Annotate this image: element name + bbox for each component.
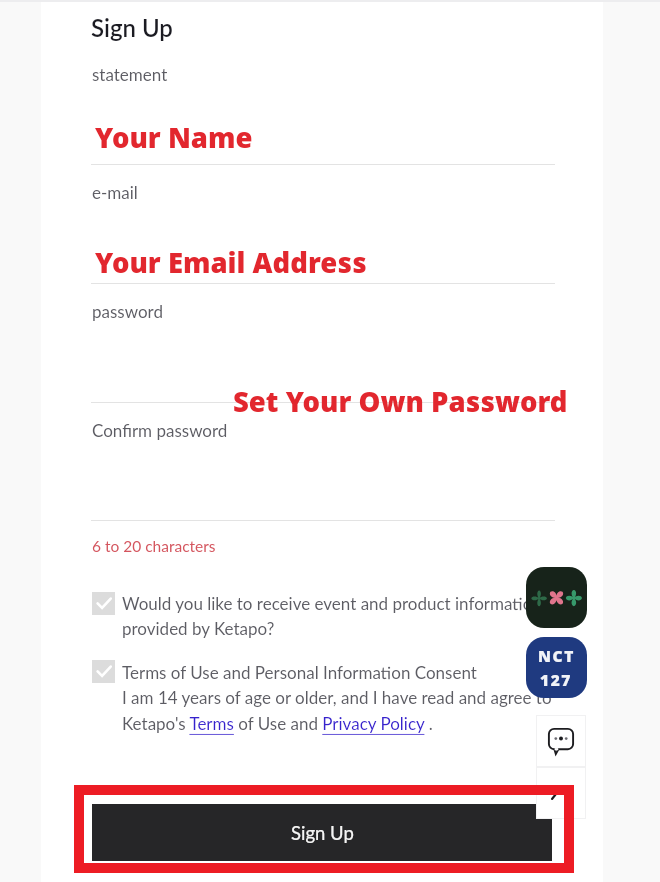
button[interactable]: Sign Up: [92, 804, 552, 861]
staticText: statement: [92, 64, 168, 84]
staticText: Would you like to receive event and prod…: [122, 593, 562, 639]
staticText: e-mail: [92, 182, 138, 202]
staticText: Set Your Own Password: [233, 383, 568, 420]
button[interactable]: Checkbox: [92, 592, 115, 615]
staticText: 6 to 20 characters: [92, 537, 216, 556]
staticText: password: [92, 301, 163, 321]
button[interactable]: Scroll to top: [536, 767, 586, 819]
button[interactable]: NCT 127: [526, 637, 587, 698]
staticText: NCT: [538, 645, 575, 666]
staticText: 127: [540, 669, 573, 690]
staticText: Sign Up: [291, 822, 354, 844]
button[interactable]: Chat: [536, 715, 586, 767]
button[interactable]: App shortcut: [526, 567, 587, 628]
staticText: Your Name: [95, 119, 253, 156]
button[interactable]: Checkbox: [92, 660, 115, 683]
staticText: Terms of Use and Personal Information Co…: [122, 662, 562, 734]
staticText: Sign Up: [91, 13, 173, 42]
staticText: Your Email Address: [95, 244, 367, 281]
staticText: Confirm password: [92, 420, 228, 440]
